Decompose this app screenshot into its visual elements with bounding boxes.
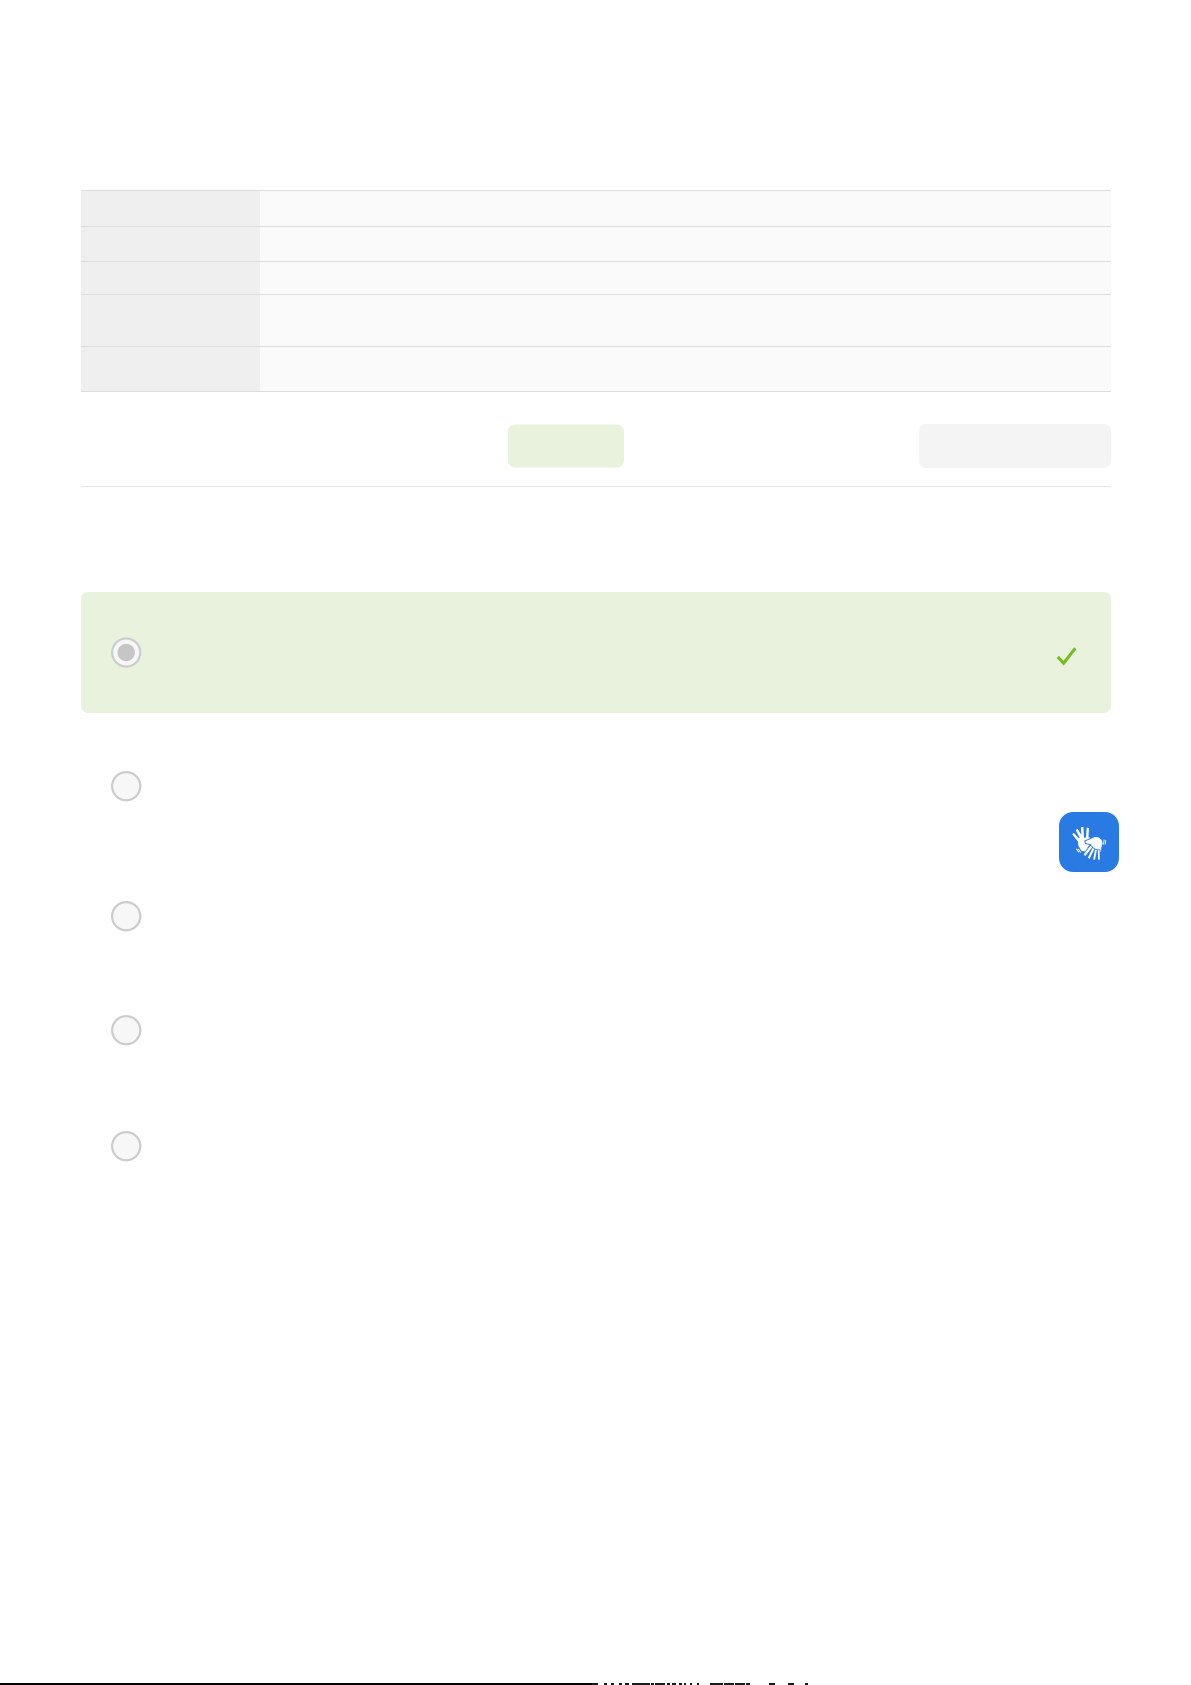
button[interactable] [81,592,1111,713]
button[interactable]: Sign language [1059,812,1119,872]
button[interactable] [508,424,624,467]
button[interactable] [81,771,1111,879]
